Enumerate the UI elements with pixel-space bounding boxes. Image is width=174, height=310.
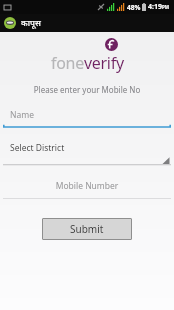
staticText: कापूस bbox=[21, 17, 41, 29]
button[interactable]: App icon bbox=[4, 17, 16, 29]
button[interactable]: Mobile Number bbox=[3, 180, 171, 200]
staticText: PM bbox=[162, 4, 170, 10]
button[interactable]: Submit bbox=[42, 218, 132, 240]
staticText: verify bbox=[84, 52, 124, 74]
staticText: 4:19 bbox=[148, 2, 162, 12]
button[interactable]: Select District bbox=[3, 142, 171, 166]
staticText: Name bbox=[10, 109, 34, 121]
staticText: Mobile Number bbox=[3, 180, 171, 192]
staticText: 48% bbox=[127, 3, 141, 12]
staticText: Select District bbox=[10, 142, 65, 154]
staticText: fone bbox=[51, 52, 84, 74]
staticText: Please enter your Mobile No bbox=[0, 84, 174, 95]
button[interactable]: Name bbox=[3, 109, 171, 129]
staticText: Submit bbox=[70, 222, 104, 236]
